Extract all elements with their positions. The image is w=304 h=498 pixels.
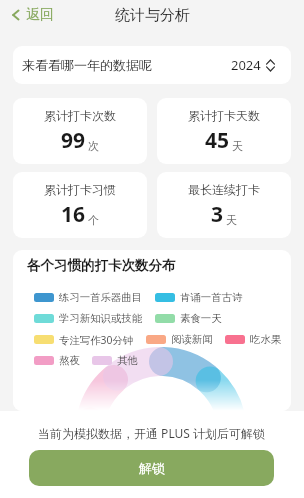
staticText: 阅读新闻 — [171, 333, 213, 346]
staticText: 其他 — [117, 354, 138, 367]
staticText: 99 — [61, 126, 86, 155]
button[interactable]: 累计打卡次数 — [13, 98, 147, 164]
button[interactable]: 解锁 — [29, 450, 274, 486]
staticText: 统计与分析 — [115, 6, 190, 25]
other: 选择年份 — [266, 59, 275, 72]
staticText: 最长连续打卡 — [188, 182, 260, 197]
staticText: 解锁 — [139, 460, 165, 476]
button[interactable]: 累计打卡天数 — [157, 98, 291, 164]
staticText: 专注写作30分钟 — [59, 333, 134, 347]
staticText: 各个习惯的打卡次数分布 — [27, 257, 176, 274]
staticText: 天 — [226, 213, 237, 227]
button[interactable]: 返回 — [9, 6, 54, 24]
staticText: 练习一首乐器曲目 — [59, 291, 143, 304]
staticText: 天 — [232, 139, 243, 153]
staticText: 熬夜 — [59, 354, 80, 367]
staticText: 素食一天 — [180, 312, 222, 325]
staticText: 返回 — [26, 6, 54, 24]
staticText: 累计打卡天数 — [188, 108, 260, 123]
staticText: 45 — [205, 126, 230, 155]
button[interactable]: 累计打卡习惯 — [13, 172, 147, 238]
staticText: 3 — [211, 200, 224, 229]
button[interactable]: 最长连续打卡 — [157, 172, 291, 238]
staticText: 2024 — [231, 56, 261, 74]
staticText: 16 — [61, 200, 86, 229]
staticText: 来看看哪一年的数据呢 — [22, 57, 152, 73]
staticText: 吃水果 — [250, 333, 282, 346]
staticText: 肯诵一首古诗 — [180, 291, 243, 304]
staticText: 当前为模拟数据，开通 PLUS 计划后可解锁 — [38, 425, 266, 441]
staticText: 学习新知识或技能 — [59, 312, 143, 325]
staticText: 次 — [88, 139, 99, 153]
button[interactable]: 来看看哪一年的数据呢 — [13, 46, 291, 84]
staticText: 累计打卡次数 — [44, 108, 116, 123]
staticText: 累计打卡习惯 — [44, 182, 116, 197]
staticText: 个 — [88, 213, 99, 227]
